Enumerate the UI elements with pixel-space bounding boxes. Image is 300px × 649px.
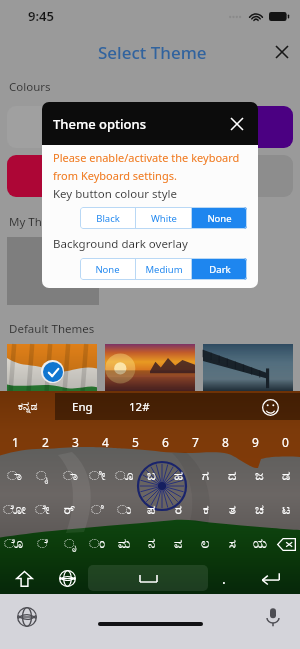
button[interactable]: ಪ [138, 493, 165, 527]
button[interactable]: Close dialog [224, 111, 250, 137]
staticText: 9:45 [28, 7, 54, 25]
staticText: ೃ [64, 538, 77, 551]
button[interactable]: ಮ [111, 527, 138, 561]
button[interactable]: ಾ [0, 459, 28, 493]
button[interactable]: ೃ [56, 527, 84, 561]
button[interactable]: White [136, 207, 191, 229]
button[interactable]: ಿ [84, 493, 111, 527]
button[interactable]: Black [80, 207, 135, 229]
button[interactable]: 6 [150, 425, 180, 459]
staticText: ಾ [63, 470, 78, 483]
button[interactable] [203, 344, 293, 391]
button[interactable]: Shift [10, 564, 38, 592]
button[interactable]: 8 [210, 425, 240, 459]
button[interactable] [203, 106, 293, 148]
button[interactable]: ಯ [246, 527, 273, 561]
staticText: Dark [209, 263, 231, 276]
button[interactable] [7, 237, 99, 305]
button[interactable]: ಬ [138, 459, 165, 493]
button[interactable] [7, 344, 97, 391]
button[interactable]: 2 [30, 425, 60, 459]
button[interactable]: 12# [114, 393, 164, 420]
button[interactable]: 4 [90, 425, 120, 459]
button[interactable]: 1 [0, 425, 30, 459]
button[interactable]: ದ [219, 459, 246, 493]
button[interactable] [105, 106, 195, 148]
button[interactable]: ಜ [246, 459, 273, 493]
staticText: ಬ [147, 470, 156, 483]
staticText: 1 [12, 434, 19, 450]
button[interactable]: ತ [219, 493, 246, 527]
button[interactable] [7, 155, 97, 197]
button[interactable] [88, 565, 208, 591]
button[interactable]: ರ [165, 493, 192, 527]
button[interactable]: Dark [192, 258, 247, 280]
staticText: ನ [148, 538, 156, 551]
staticText: Colours [9, 79, 51, 95]
button[interactable]: ಹ [165, 459, 192, 493]
button[interactable]: Language [53, 564, 81, 592]
staticText: ಯ [253, 538, 267, 551]
button[interactable]: Close [267, 37, 297, 67]
staticText: ರ್ [64, 504, 76, 517]
button[interactable]: ೇ [28, 493, 56, 527]
staticText: Eng [72, 399, 93, 415]
button[interactable]: 0 [270, 425, 300, 459]
button[interactable]: Switch keyboard [12, 602, 42, 632]
button[interactable]: ಡ [273, 459, 300, 493]
button[interactable]: ಂ [84, 527, 111, 561]
button[interactable]: ಾ [56, 459, 84, 493]
staticText: ರ [175, 504, 182, 517]
button[interactable]: 5 [120, 425, 150, 459]
button[interactable]: ೀ [84, 459, 111, 493]
button[interactable]: ಗ [192, 459, 219, 493]
staticText: 5 [132, 434, 139, 450]
staticText: ವ [174, 538, 183, 551]
button[interactable]: 9 [240, 425, 270, 459]
button[interactable]: Backspace [273, 527, 300, 561]
button[interactable]: ಸ [219, 527, 246, 561]
staticText: from Keyboard settings. [53, 168, 177, 183]
button[interactable]: Dictation [258, 602, 288, 632]
button[interactable]: ಚ [246, 493, 273, 527]
button[interactable]: None [80, 258, 135, 280]
button[interactable]: ೋ [0, 493, 28, 527]
button[interactable] [7, 106, 97, 148]
button[interactable]: ರ್ [56, 493, 84, 527]
staticText: ಚ [255, 504, 264, 517]
button[interactable]: ೖ [28, 459, 56, 493]
button[interactable]: ೆ [28, 527, 56, 561]
button[interactable]: ೂ [111, 459, 138, 493]
button[interactable]: ನ [138, 527, 165, 561]
staticText: Medium [145, 263, 183, 276]
staticText: ಸ [229, 538, 236, 551]
button[interactable]: Emoji [258, 395, 282, 419]
staticText: ಗ [202, 470, 210, 483]
button[interactable]: 3 [60, 425, 90, 459]
button[interactable]: ು [111, 493, 138, 527]
button[interactable]: ವ [165, 527, 192, 561]
button[interactable]: Medium [136, 258, 191, 280]
staticText: ೋ [3, 504, 26, 517]
button[interactable]: ಕನ್ನಡ [0, 393, 55, 420]
button[interactable]: ಲ [192, 527, 219, 561]
button[interactable]: ಕ [192, 493, 219, 527]
staticText: Default Themes [9, 321, 95, 337]
staticText: None [207, 212, 232, 225]
button[interactable]: ಟ [273, 493, 300, 527]
staticText: ಕ [203, 504, 209, 517]
staticText: ೂ [115, 470, 134, 483]
button[interactable]: None [192, 207, 247, 229]
staticText: ಟ [282, 504, 291, 517]
button[interactable]: Enter [256, 564, 284, 592]
staticText: ಪ [147, 504, 156, 517]
button[interactable] [203, 155, 293, 197]
button[interactable]: Eng [56, 393, 108, 420]
button[interactable]: ೊ [0, 527, 28, 561]
button[interactable] [105, 344, 195, 391]
staticText: ಂ [89, 538, 106, 551]
button[interactable]: . [210, 564, 238, 592]
staticText: My Themes [9, 214, 72, 230]
button[interactable] [105, 155, 195, 197]
button[interactable]: 7 [180, 425, 210, 459]
